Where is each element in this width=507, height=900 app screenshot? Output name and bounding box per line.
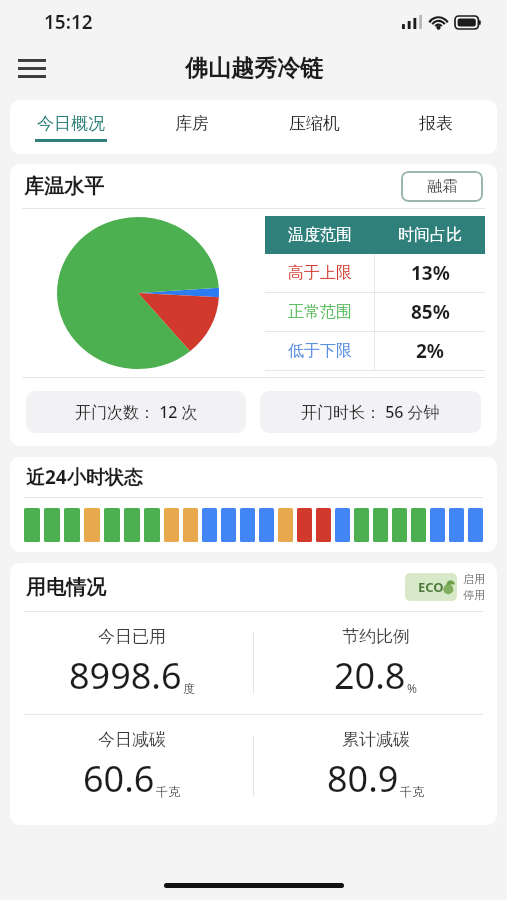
button[interactable]: Menu: [10, 46, 54, 90]
staticText: 融霜: [427, 177, 457, 196]
staticText: 千克: [156, 784, 180, 799]
staticText: 库房: [175, 113, 209, 134]
staticText: 度: [183, 681, 195, 696]
button[interactable]: 报表: [375, 100, 497, 154]
button[interactable]: 压缩机: [253, 100, 375, 154]
staticText: 停用: [463, 588, 485, 602]
button[interactable]: 节约比例: [254, 612, 497, 714]
staticText: %: [407, 680, 417, 696]
staticText: 2%: [416, 338, 445, 364]
button[interactable]: 累计减碳: [254, 715, 497, 817]
staticText: 开门次数： 12 次: [75, 401, 198, 423]
staticText: 启用: [463, 572, 485, 586]
staticText: 千克: [400, 784, 424, 799]
staticText: 温度范围: [288, 225, 352, 245]
staticText: 用电情况: [26, 575, 106, 600]
staticText: 开门时长： 56 分钟: [301, 401, 440, 423]
staticText: 近24小时状态: [26, 464, 143, 490]
button[interactable]: 开门时长： 56 分钟: [260, 391, 481, 433]
staticText: ECO: [418, 578, 444, 596]
button[interactable]: 今日已用: [10, 612, 253, 714]
button[interactable]: 今日概况: [10, 100, 131, 154]
staticText: 13%: [411, 260, 450, 286]
staticText: 今日概况: [37, 113, 105, 134]
staticText: 高于上限: [288, 263, 352, 283]
staticText: 20.8: [334, 651, 406, 700]
button[interactable]: 今日减碳: [10, 715, 253, 817]
staticText: 60.6: [83, 754, 155, 803]
staticText: 15:12: [44, 9, 93, 35]
button[interactable]: 融霜: [401, 171, 483, 202]
button[interactable]: 库房: [131, 100, 253, 154]
staticText: 今日已用: [98, 626, 166, 647]
staticText: 佛山越秀冷链: [185, 54, 323, 83]
staticText: 8998.6: [69, 651, 182, 700]
staticText: 85%: [411, 299, 450, 325]
staticText: 库温水平: [24, 174, 104, 199]
staticText: 低于下限: [288, 341, 352, 361]
staticText: 正常范围: [288, 302, 352, 322]
staticText: 累计减碳: [342, 729, 410, 750]
staticText: 报表: [419, 113, 453, 134]
staticText: 节约比例: [342, 626, 410, 647]
staticText: 80.9: [327, 754, 399, 803]
button[interactable]: ECO: [405, 572, 485, 602]
staticText: 压缩机: [289, 113, 340, 134]
staticText: 今日减碳: [98, 729, 166, 750]
staticText: 时间占比: [398, 225, 462, 245]
button[interactable]: 开门次数： 12 次: [26, 391, 246, 433]
